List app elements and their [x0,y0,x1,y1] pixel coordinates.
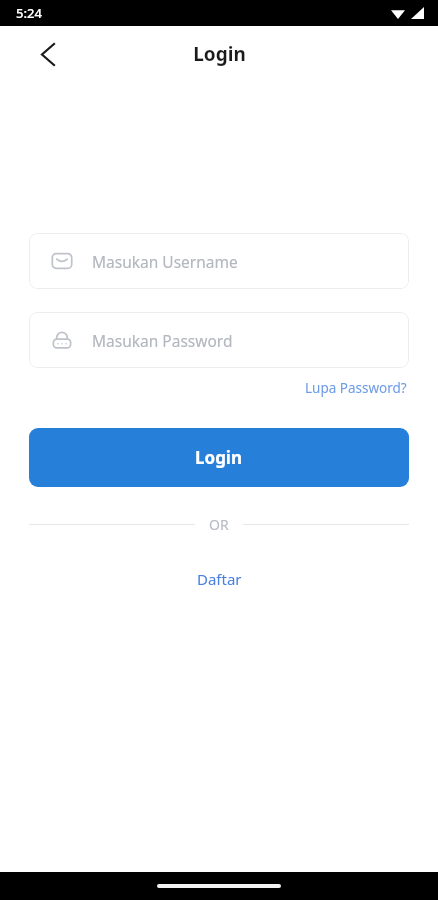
button[interactable]: Back [28,34,68,74]
staticText: Masukan Password [92,330,233,351]
staticText: Login [193,41,246,67]
button[interactable]: Login [29,428,409,487]
staticText: Daftar [197,569,242,589]
staticText: Masukan Username [92,251,238,272]
staticText: 5:24 [16,4,42,22]
staticText: OR [209,515,229,534]
button[interactable]: Masukan Password [29,312,409,368]
button[interactable]: Lupa Password? [303,377,409,399]
button[interactable]: Daftar [187,566,252,592]
staticText: Lupa Password? [305,379,407,397]
staticText: Login [195,446,243,469]
button[interactable]: Masukan Username [29,233,409,289]
